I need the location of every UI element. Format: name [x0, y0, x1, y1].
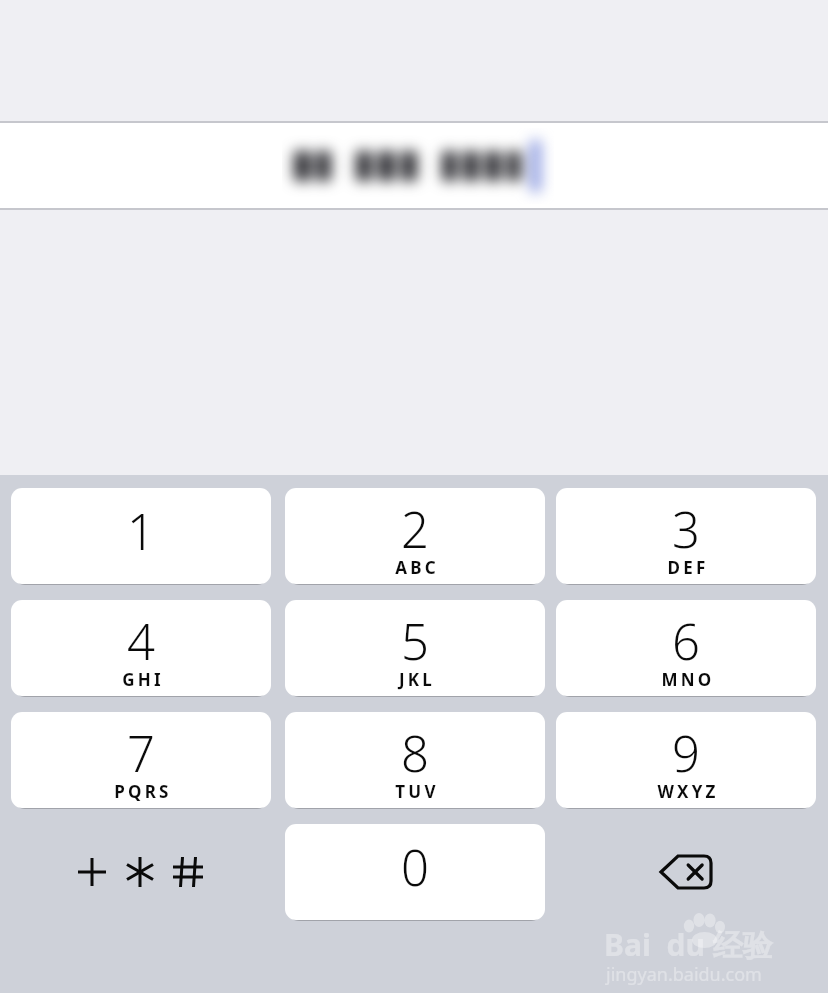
staticText: TUV [287, 780, 545, 802]
staticText: 3 [556, 496, 816, 556]
button[interactable]: 5 [285, 600, 545, 696]
staticText: MNO [558, 668, 816, 690]
button[interactable]: 2 [285, 488, 545, 584]
button[interactable]: 6 [556, 600, 816, 696]
staticText: 8 [285, 720, 545, 780]
staticText: jingyan.baidu.com [606, 962, 762, 987]
staticText: 4 [11, 608, 271, 668]
button[interactable]: 1 [11, 488, 271, 584]
button[interactable]: 7 [11, 712, 271, 808]
staticText: 9 [556, 720, 816, 780]
staticText: 1 [11, 498, 271, 558]
staticText: WXYZ [558, 780, 816, 802]
staticText: DEF [558, 556, 816, 578]
button[interactable]: 3 [556, 488, 816, 584]
staticText: ABC [287, 556, 545, 578]
button[interactable]: Plus star hash [11, 824, 271, 920]
staticText: PQRS [13, 780, 271, 802]
staticText: GHI [13, 668, 271, 690]
staticText: JKL [287, 668, 545, 690]
staticText: Bai du 经验 [604, 924, 773, 965]
staticText: 2 [285, 496, 545, 556]
button[interactable]: 8 [285, 712, 545, 808]
button[interactable]: 4 [11, 600, 271, 696]
button[interactable]: 9 [556, 712, 816, 808]
staticText: 5 [285, 608, 545, 668]
staticText: 7 [11, 720, 271, 780]
staticText: 6 [556, 608, 816, 668]
button[interactable]: Delete [556, 824, 816, 920]
button[interactable]: 0 [285, 824, 545, 920]
staticText: 0 [285, 834, 545, 894]
